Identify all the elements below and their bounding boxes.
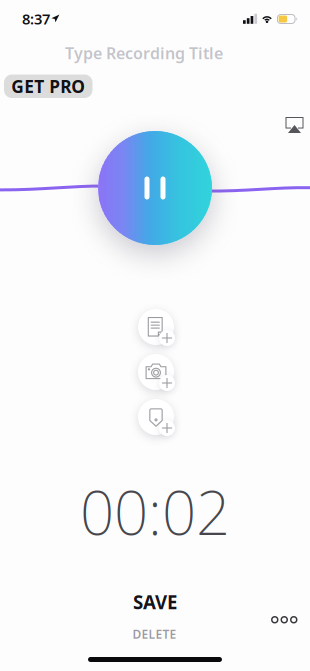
- button[interactable]: Add photo: [138, 354, 192, 399]
- button[interactable]: More options: [262, 607, 306, 632]
- staticText: GET PRO: [11, 75, 85, 98]
- button[interactable]: Add bookmark: [138, 399, 192, 444]
- button[interactable]: GET PRO: [4, 74, 92, 98]
- button[interactable]: DELETE: [94, 625, 214, 643]
- button[interactable]: AirPlay: [278, 110, 310, 140]
- button[interactable]: SAVE: [95, 589, 215, 615]
- staticText: DELETE: [132, 626, 176, 642]
- staticText: Type Recording Title: [65, 42, 223, 64]
- staticText: 00:02: [80, 472, 230, 552]
- button[interactable]: Add note: [138, 309, 192, 354]
- button[interactable]: Pause recording: [98, 131, 212, 245]
- staticText: SAVE: [133, 590, 177, 614]
- staticText: 8:37: [22, 9, 50, 28]
